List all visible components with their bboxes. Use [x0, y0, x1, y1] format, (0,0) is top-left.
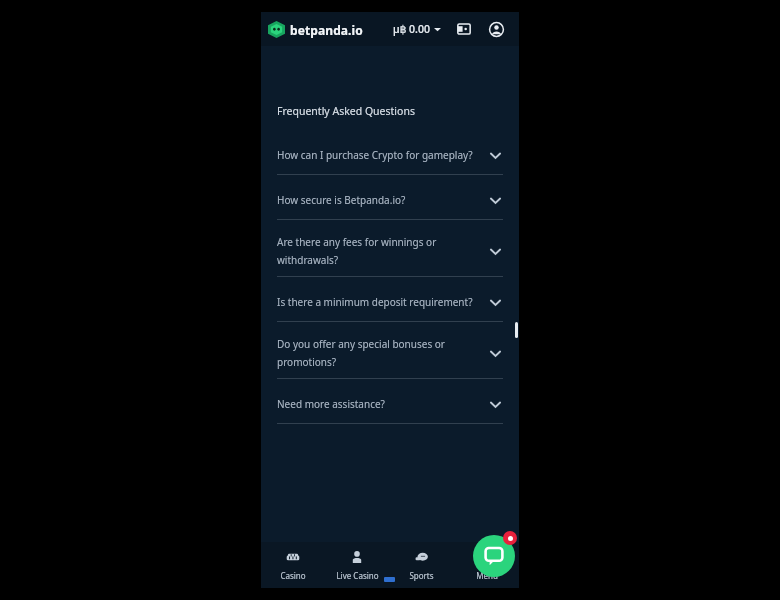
staticText: How secure is Betpanda.io? — [277, 193, 406, 207]
button[interactable]: µ฿ 0.00 — [391, 18, 443, 40]
button[interactable]: Account — [483, 16, 509, 42]
button[interactable]: Live Casino — [325, 542, 389, 588]
staticText: withdrawals? — [277, 253, 339, 267]
button[interactable]: Menu — [454, 542, 519, 588]
staticText: Do you offer any special bonuses or — [277, 337, 445, 351]
button[interactable]: betpanda.io — [266, 21, 365, 38]
button[interactable]: Casino — [261, 542, 325, 588]
staticText: Sports — [409, 570, 434, 581]
staticText: Are there any fees for winnings or — [277, 235, 437, 249]
staticText: Is there a minimum deposit requirement? — [277, 295, 473, 309]
button[interactable]: Need more assistance? — [277, 393, 503, 438]
staticText: Casino — [280, 570, 306, 581]
staticText: promotions? — [277, 355, 337, 369]
button[interactable]: Open live chat — [473, 535, 515, 577]
staticText: Live Casino — [336, 570, 379, 581]
button[interactable]: How can I purchase Crypto for gameplay? — [277, 144, 503, 189]
staticText: µ฿ 0.00 — [393, 22, 430, 36]
button[interactable]: Wallet — [451, 16, 477, 42]
button[interactable]: Is there a minimum deposit requirement? — [277, 291, 503, 336]
button[interactable]: Are there any fees for winnings or — [277, 234, 503, 291]
button[interactable]: How secure is Betpanda.io? — [277, 189, 503, 234]
staticText: Need more assistance? — [277, 397, 385, 411]
staticText: betpanda.io — [290, 22, 363, 38]
staticText: Menu — [476, 570, 498, 581]
button[interactable]: Do you offer any special bonuses or — [277, 336, 503, 393]
button[interactable]: Sports — [389, 542, 454, 588]
staticText: Frequently Asked Questions — [277, 104, 415, 118]
staticText: How can I purchase Crypto for gameplay? — [277, 148, 473, 162]
